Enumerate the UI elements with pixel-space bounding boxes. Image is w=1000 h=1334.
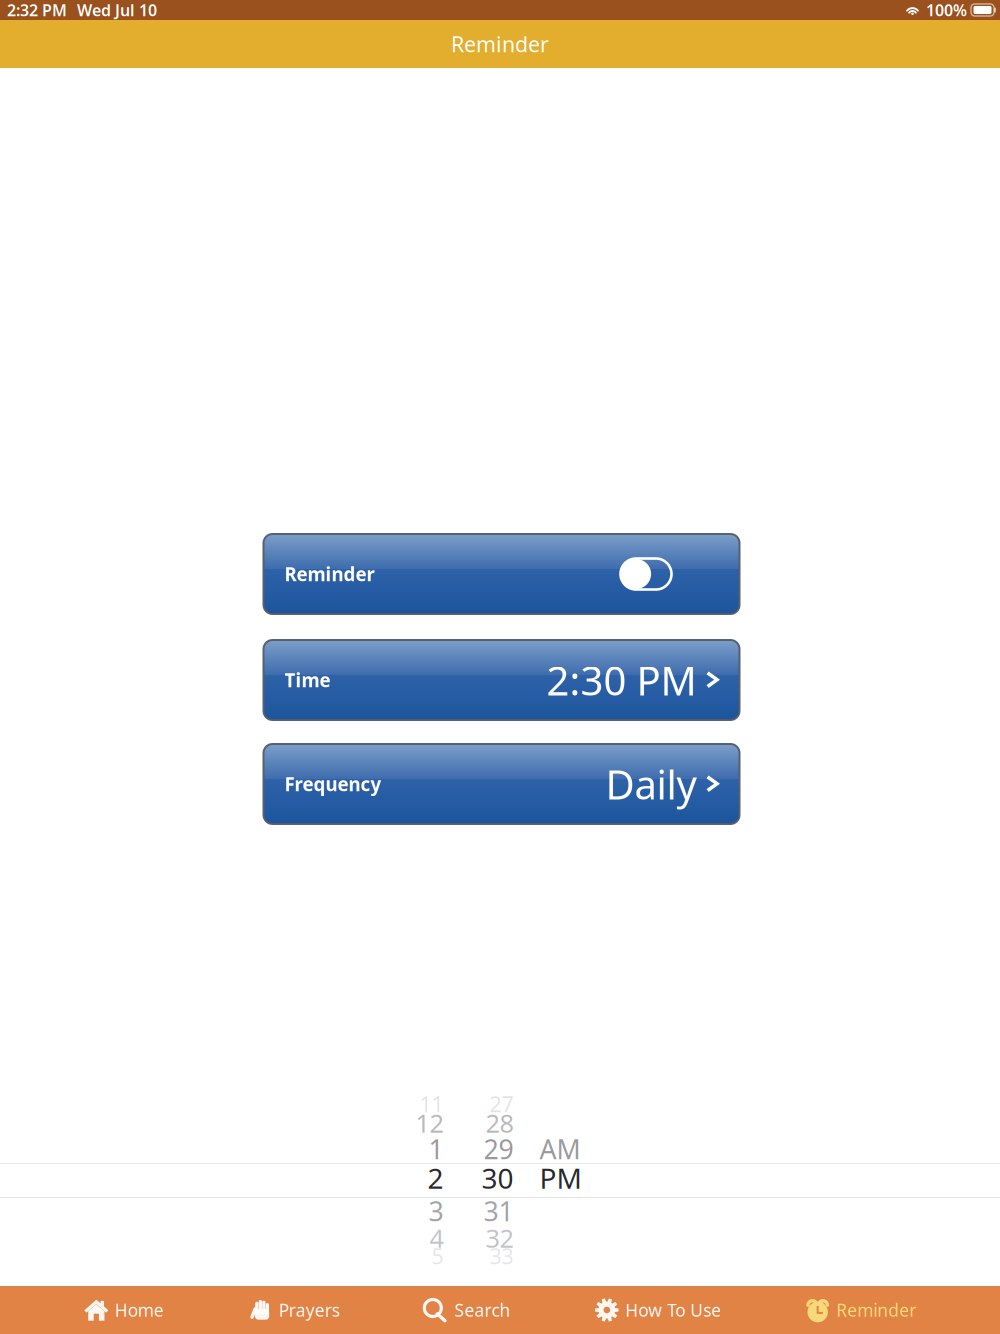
staticText: Reminder [284,562,374,586]
button[interactable]: Home [84,1286,164,1334]
button[interactable]: How To Use [594,1286,721,1334]
staticText: AM [539,1131,580,1167]
staticText: 2 [427,1159,443,1197]
button[interactable]: Search [423,1286,510,1334]
staticText: 5 [431,1242,443,1270]
staticText: Reminder [836,1298,916,1321]
button[interactable]: Time [263,640,739,720]
staticText: Time [284,668,330,692]
staticText: 100% [926,0,967,21]
button[interactable]: Frequency [263,744,739,824]
staticText: Home [115,1298,164,1321]
staticText: 31 [483,1193,513,1229]
staticText: Frequency [284,772,381,796]
staticText: Reminder [451,30,549,58]
staticText: Prayers [279,1298,340,1321]
staticText: 27 [489,1090,513,1118]
staticText: 2:30 PM [546,653,696,706]
staticText: 28 [485,1106,513,1140]
button[interactable]: Reminder [263,534,739,614]
button[interactable]: Prayers [248,1286,340,1334]
button[interactable]: Reminder [805,1286,916,1334]
staticText: Search [454,1298,510,1321]
staticText: 12 [415,1106,443,1140]
staticText: PM [539,1159,581,1197]
staticText: 30 [481,1159,513,1197]
staticText: 1 [428,1131,443,1167]
staticText: Wed Jul 10 [77,0,157,21]
staticText: 32 [485,1221,513,1255]
staticText: 2:32 PM [7,0,67,21]
staticText: 11 [419,1090,443,1118]
staticText: 33 [489,1242,513,1270]
staticText: 3 [428,1193,443,1229]
staticText: 4 [429,1221,443,1255]
staticText: How To Use [625,1298,721,1321]
staticText: 29 [483,1131,513,1167]
staticText: Daily [605,757,696,810]
